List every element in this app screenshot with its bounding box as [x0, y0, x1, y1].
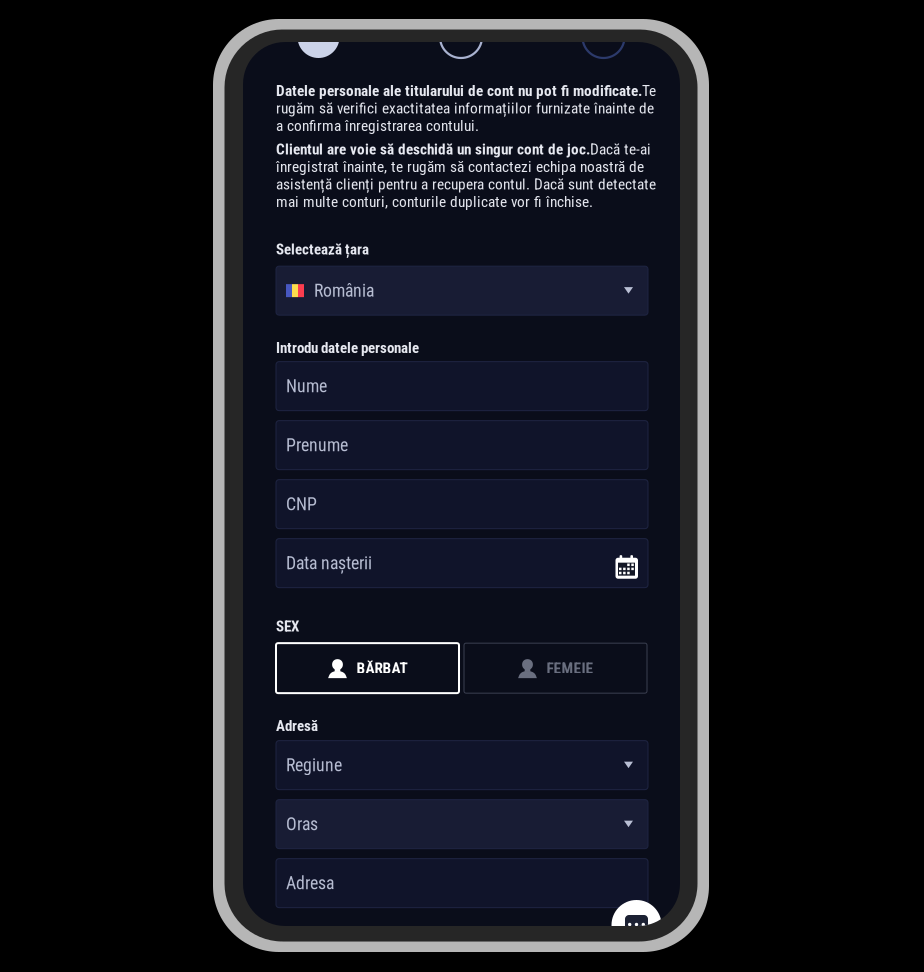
staticText: SEX	[276, 618, 299, 635]
staticText: Introdu datele personale	[276, 339, 419, 357]
button[interactable]: România	[276, 266, 648, 315]
button[interactable]: Chat support	[611, 900, 661, 950]
button[interactable]: Regiune	[276, 741, 648, 790]
staticText: Adresa	[286, 873, 334, 893]
staticText: România	[314, 280, 374, 301]
staticText: Data nașterii	[286, 553, 372, 573]
staticText: Nume	[286, 376, 327, 396]
staticText: Prenume	[286, 435, 348, 455]
button[interactable]: Adresa	[276, 859, 648, 908]
button[interactable]: Data nașterii	[276, 539, 648, 588]
button[interactable]: Prenume	[276, 421, 648, 470]
button[interactable]: CNP	[276, 480, 648, 529]
staticText: Adresă	[276, 717, 318, 735]
button[interactable]: Nume	[276, 362, 648, 411]
staticText: Oras	[286, 814, 318, 834]
button[interactable]: FEMEIE	[464, 643, 647, 693]
staticText: Clientul are voie să deschidă un singur …	[276, 141, 656, 211]
staticText: Datele personale ale titularului de cont…	[276, 82, 656, 135]
staticText: Selectează țara	[276, 241, 369, 258]
staticText: BĂRBAT	[356, 659, 407, 677]
staticText: FEMEIE	[546, 659, 593, 677]
button[interactable]: BĂRBAT	[276, 643, 459, 693]
staticText: CNP	[286, 494, 317, 514]
staticText: Regiune	[286, 755, 342, 775]
button[interactable]: Oras	[276, 800, 648, 849]
